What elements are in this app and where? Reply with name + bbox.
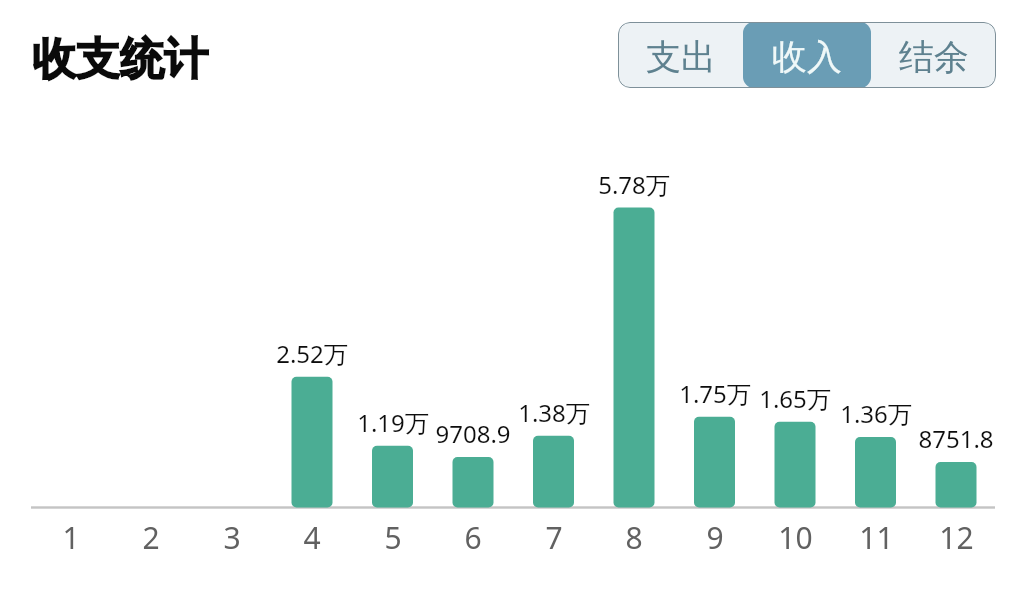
button[interactable]: 7 bbox=[514, 517, 594, 558]
staticText: 11 bbox=[859, 517, 894, 558]
button[interactable]: 12 bbox=[916, 517, 996, 558]
staticText: 2.52万 bbox=[276, 337, 348, 370]
button[interactable]: 8 bbox=[594, 517, 674, 558]
staticText: 4 bbox=[303, 517, 321, 558]
staticText: 8751.8 bbox=[918, 422, 994, 455]
button[interactable]: 2 bbox=[111, 517, 191, 558]
button[interactable]: 6 bbox=[433, 517, 513, 558]
button[interactable]: 10 bbox=[755, 517, 835, 558]
staticText: 1.36万 bbox=[840, 397, 912, 430]
button[interactable]: 4 bbox=[272, 517, 352, 558]
staticText: 5.78万 bbox=[598, 168, 670, 201]
button[interactable]: 支出 bbox=[618, 22, 743, 88]
staticText: 7 bbox=[545, 517, 563, 558]
staticText: 12 bbox=[939, 517, 974, 558]
staticText: 1.75万 bbox=[679, 377, 751, 410]
button[interactable]: 收入 bbox=[743, 22, 871, 88]
staticText: 1 bbox=[62, 517, 80, 558]
button[interactable]: 1 bbox=[31, 517, 111, 558]
staticText: 8 bbox=[625, 517, 643, 558]
button[interactable]: 11 bbox=[836, 517, 916, 558]
staticText: 10 bbox=[778, 517, 813, 558]
staticText: 6 bbox=[464, 517, 482, 558]
button[interactable]: 9 bbox=[675, 517, 755, 558]
staticText: 1.19万 bbox=[357, 406, 429, 439]
staticText: 5 bbox=[384, 517, 402, 558]
other: Monthly income bar chart bbox=[0, 0, 1026, 591]
staticText: 9 bbox=[706, 517, 724, 558]
button[interactable]: 结余 bbox=[871, 22, 996, 88]
button[interactable]: 3 bbox=[192, 517, 272, 558]
button[interactable]: 5 bbox=[353, 517, 433, 558]
staticText: 2 bbox=[142, 517, 160, 558]
staticText: 结余 bbox=[899, 35, 969, 79]
staticText: 收支统计 bbox=[32, 32, 208, 87]
staticText: 1.38万 bbox=[518, 396, 590, 429]
staticText: 收入 bbox=[772, 35, 842, 79]
staticText: 1.65万 bbox=[759, 382, 831, 415]
staticText: 支出 bbox=[646, 35, 716, 79]
staticText: 9708.9 bbox=[435, 417, 511, 450]
staticText: 3 bbox=[223, 517, 241, 558]
